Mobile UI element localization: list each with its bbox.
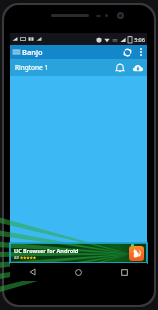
button[interactable]: Open navigation drawer [10, 45, 22, 59]
button[interactable]: Ringtone 1 [10, 59, 147, 76]
staticText: AD [14, 255, 19, 260]
staticText: Banjo [22, 47, 119, 57]
button[interactable]: Download [129, 59, 147, 76]
button[interactable]: More options [135, 45, 147, 59]
button[interactable]: Recent apps [101, 263, 147, 281]
staticText: Ringtone 1 [15, 63, 111, 72]
button[interactable]: Home [55, 263, 101, 281]
button[interactable]: UC Browser for Android [10, 243, 147, 263]
staticText: 3:06 [134, 36, 145, 43]
button[interactable]: Back [10, 263, 55, 281]
button[interactable]: Refresh [119, 45, 135, 59]
staticText: UC Browser for Android [14, 247, 79, 254]
button[interactable]: Set as ringtone [111, 59, 129, 76]
